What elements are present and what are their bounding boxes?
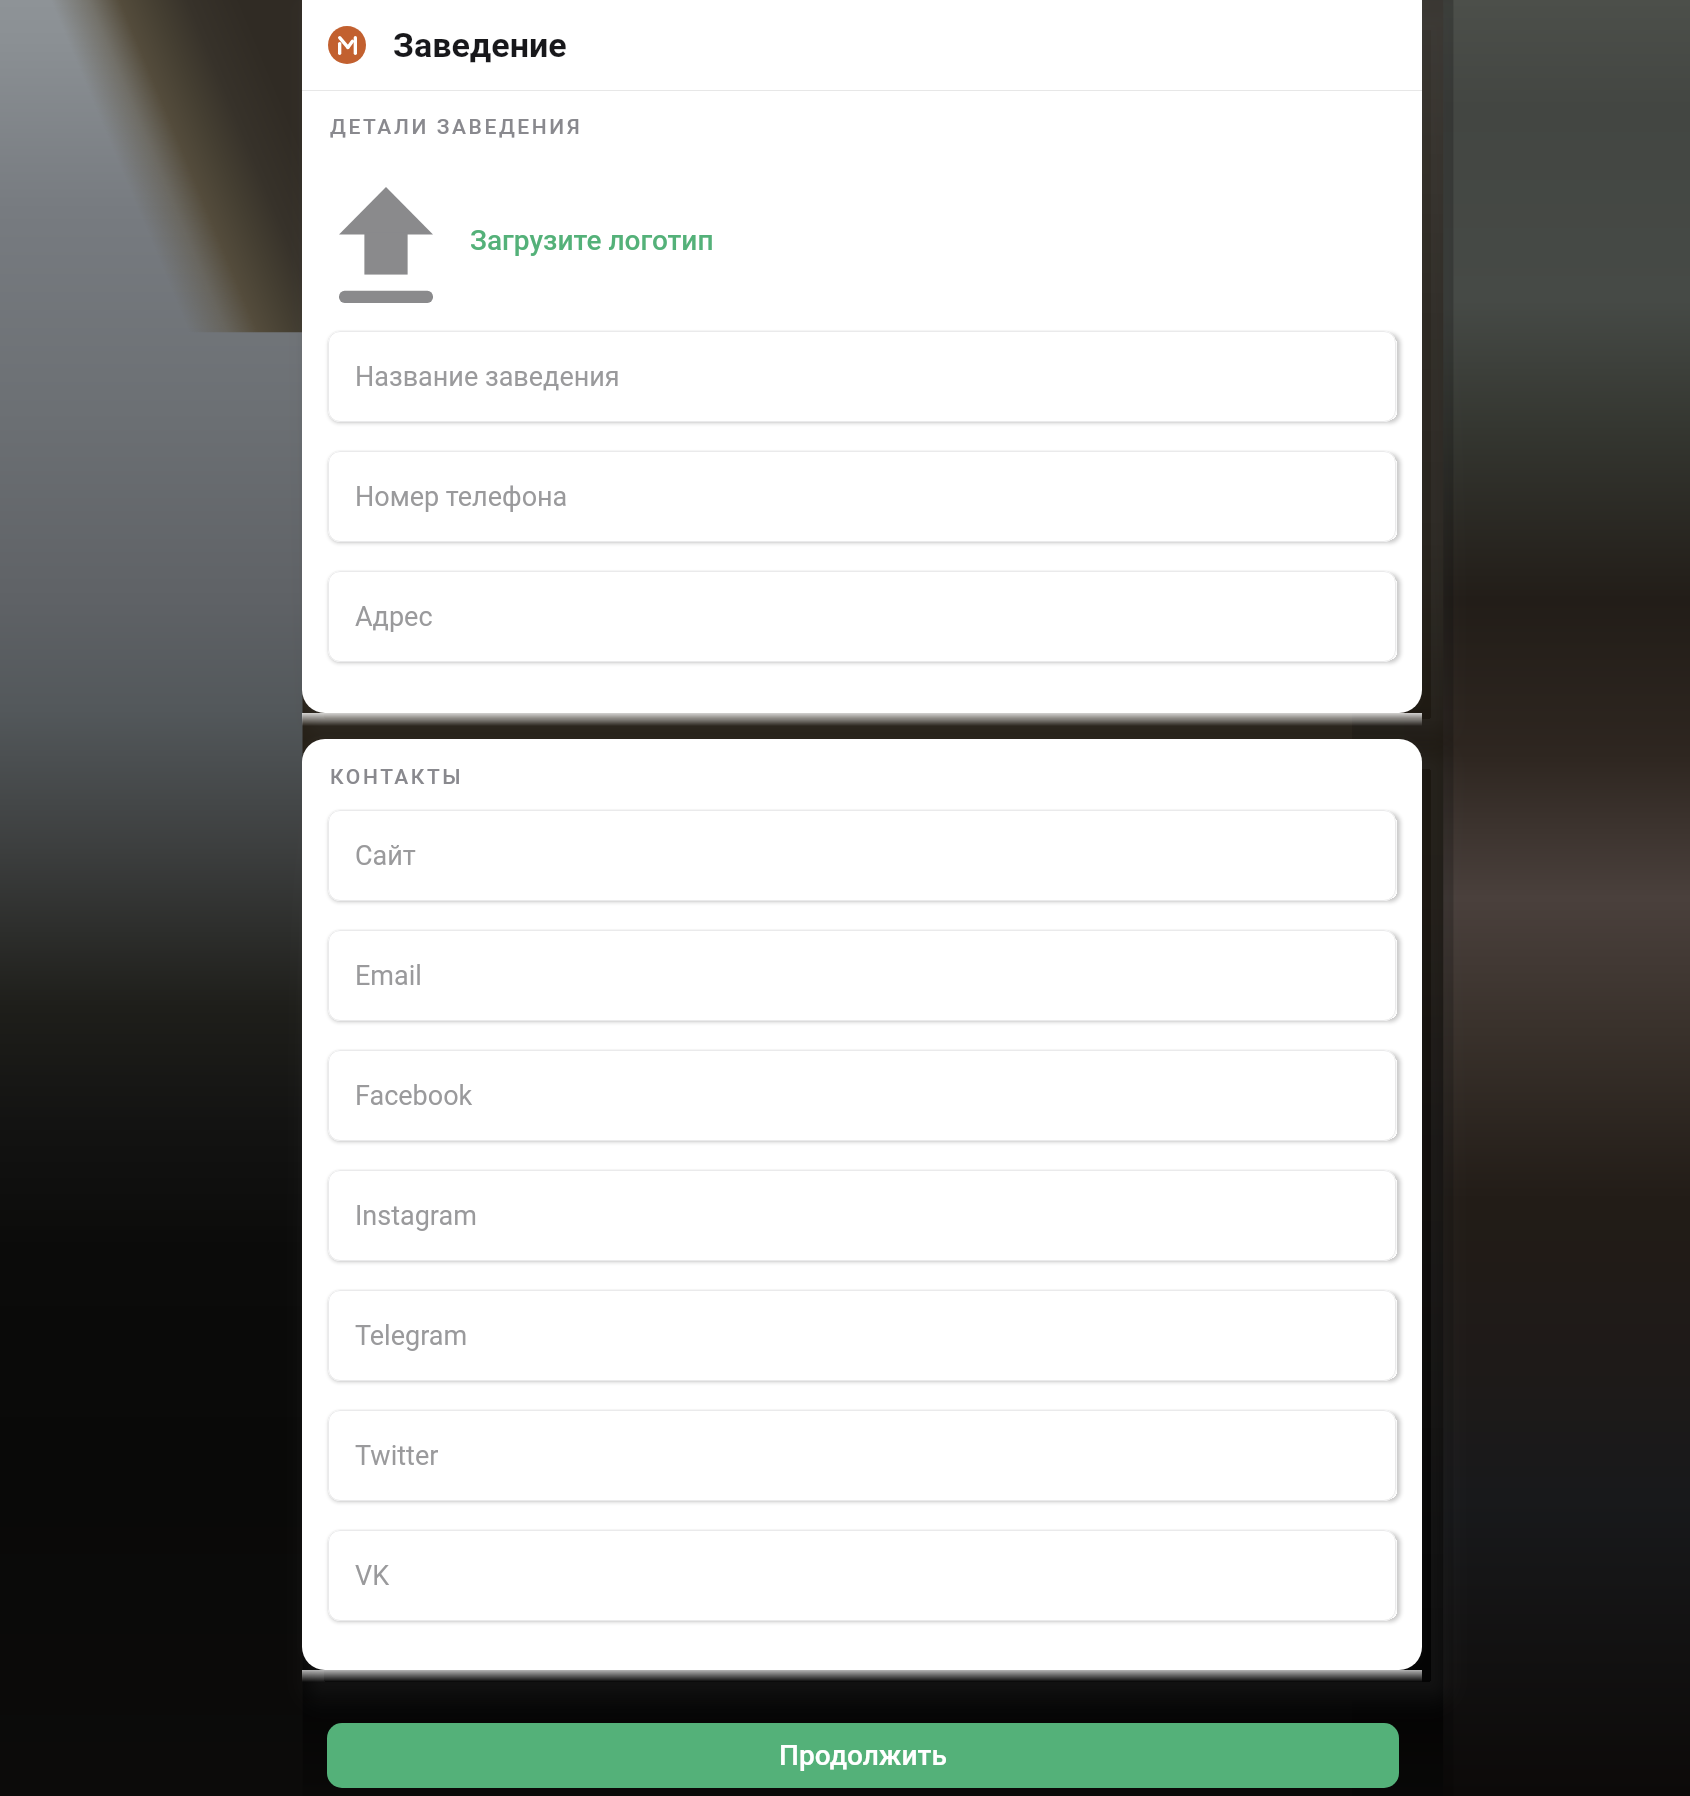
button[interactable]: Telegram	[328, 1290, 1396, 1381]
staticText: Twitter	[355, 1440, 439, 1472]
staticText: Заведение	[393, 25, 567, 65]
staticText: Номер телефона	[355, 481, 568, 513]
staticText: ДЕТАЛИ ЗАВЕДЕНИЯ	[330, 115, 583, 140]
staticText: Facebook	[355, 1080, 473, 1112]
button[interactable]: Email	[328, 930, 1396, 1021]
button[interactable]: Адрес	[328, 571, 1396, 662]
button[interactable]: Сайт	[328, 810, 1396, 901]
staticText: Адрес	[355, 601, 433, 633]
staticText: Telegram	[355, 1320, 468, 1352]
staticText: Email	[355, 960, 422, 992]
button[interactable]: Instagram	[328, 1170, 1396, 1261]
button[interactable]: Заведение	[302, 0, 1422, 90]
button[interactable]: Продолжить	[327, 1723, 1399, 1788]
staticText: VK	[355, 1560, 390, 1592]
staticText: Сайт	[355, 840, 416, 872]
button[interactable]: Загрузить логотип	[339, 187, 433, 303]
staticText: КОНТАКТЫ	[330, 765, 464, 790]
button[interactable]: Twitter	[328, 1410, 1396, 1501]
button[interactable]: Facebook	[328, 1050, 1396, 1141]
staticText: Продолжить	[779, 1739, 947, 1772]
staticText: Название заведения	[355, 361, 620, 393]
button[interactable]: Загрузите логотип	[470, 224, 714, 257]
staticText: Instagram	[355, 1200, 477, 1232]
button[interactable]: VK	[328, 1530, 1396, 1621]
button[interactable]: Номер телефона	[328, 451, 1396, 542]
button[interactable]: Название заведения	[328, 331, 1396, 422]
